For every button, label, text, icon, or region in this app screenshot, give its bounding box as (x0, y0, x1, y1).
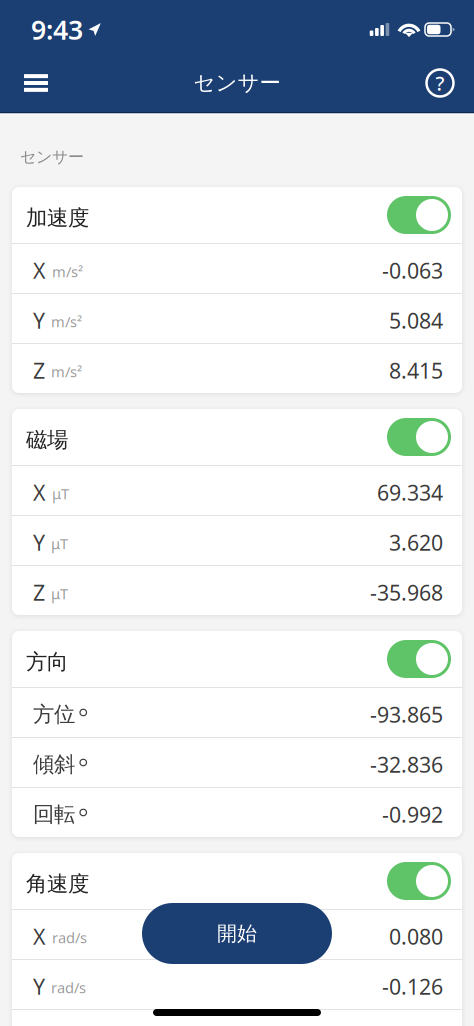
staticText: -0.063 (382, 256, 443, 285)
staticText: Z (33, 356, 45, 385)
button[interactable]: 加速度 (12, 187, 462, 243)
button[interactable]: 角速度 (12, 853, 462, 909)
staticText: 加速度 (26, 205, 89, 231)
button[interactable]: 開始 (142, 903, 332, 964)
staticText: センサー (193, 70, 280, 96)
staticText: 回転 (33, 801, 75, 828)
staticText: rad/s (52, 928, 87, 947)
staticText: m/s² (51, 362, 82, 381)
staticText: 3.620 (389, 528, 443, 557)
staticText: 方向 (26, 649, 68, 675)
staticText: -35.968 (370, 578, 443, 607)
staticText: 角速度 (26, 871, 89, 897)
staticText: 傾斜 (33, 751, 75, 778)
staticText: 8.415 (389, 356, 443, 385)
staticText: -32.836 (370, 750, 443, 779)
staticText: 69.334 (377, 478, 443, 507)
staticText: 9:43 (31, 12, 83, 47)
staticText: μT (52, 484, 69, 503)
staticText: 0.080 (389, 922, 443, 951)
staticText: X (33, 478, 46, 507)
button[interactable]: 方向 (12, 631, 462, 687)
staticText: Y (33, 528, 45, 557)
staticText: μT (51, 584, 68, 603)
staticText: 磁場 (26, 427, 68, 453)
button[interactable]: 磁場 (12, 409, 462, 465)
staticText: X (33, 256, 46, 285)
staticText: Z (33, 578, 45, 607)
button[interactable]: Menu (11, 54, 61, 112)
staticText: m/s² (51, 312, 82, 331)
staticText: Y (33, 972, 45, 1001)
staticText: 方位 (33, 701, 75, 728)
button[interactable]: Help (415, 54, 465, 112)
staticText: -93.865 (370, 700, 443, 729)
staticText: Y (33, 306, 45, 335)
staticText: 開始 (217, 921, 257, 946)
staticText: m/s² (52, 262, 83, 281)
staticText: X (33, 922, 46, 951)
staticText: rad/s (51, 978, 86, 997)
staticText: -0.992 (382, 800, 443, 829)
staticText: μT (51, 534, 68, 553)
staticText: -0.126 (382, 972, 443, 1001)
staticText: 5.084 (389, 306, 443, 335)
staticText: センサー (20, 147, 84, 167)
staticText: ? (435, 70, 444, 96)
